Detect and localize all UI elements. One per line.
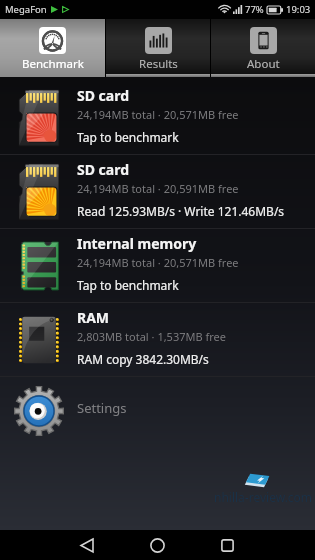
button[interactable]: SD card	[0, 155, 315, 228]
staticText: Results	[139, 56, 178, 72]
staticText: SD card	[77, 160, 130, 179]
button[interactable]: Benchmark	[0, 19, 105, 77]
staticText: SD card	[77, 86, 130, 105]
staticText: Settings	[77, 399, 127, 417]
button[interactable]: Settings	[0, 377, 315, 439]
staticText: 77%	[245, 3, 264, 16]
staticText: Internal memory	[77, 234, 197, 253]
staticText: 24,194MB total · 20,571MB free	[77, 107, 239, 122]
staticText: About	[247, 56, 280, 72]
staticText: Read 125.93MB/s · Write 121.46MB/s	[77, 203, 285, 219]
staticText: nhilla-review.com	[214, 489, 313, 505]
staticText: RAM copy 3842.30MB/s	[77, 351, 209, 367]
staticText: 2,803MB total · 1,537MB free	[77, 329, 226, 344]
button[interactable]: RAM	[0, 303, 315, 376]
staticText: Tap to benchmark	[77, 277, 179, 293]
button[interactable]: About	[211, 19, 315, 77]
button[interactable]: Internal memory	[0, 229, 315, 302]
staticText: Tap to benchmark	[77, 129, 179, 145]
button[interactable]: Results	[106, 19, 210, 77]
staticText: MegaFon	[5, 3, 47, 16]
button[interactable]: Home	[133, 530, 181, 560]
staticText: RAM	[77, 308, 110, 327]
button[interactable]: Back	[63, 530, 111, 560]
button[interactable]: SD card	[0, 81, 315, 154]
staticText: 24,194MB total · 20,591MB free	[77, 181, 239, 196]
button[interactable]: Recents	[203, 530, 251, 560]
staticText: 19:03	[286, 3, 311, 16]
staticText: 24,194MB total · 20,571MB free	[77, 255, 239, 270]
staticText: Benchmark	[22, 56, 84, 72]
